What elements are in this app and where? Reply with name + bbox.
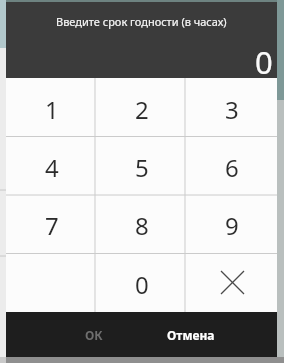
staticText: 2 [135,93,149,126]
button[interactable]: 2 [97,78,187,136]
button[interactable]: 6 [187,136,277,194]
staticText: 0 [255,41,273,83]
button[interactable]: ОК [45,312,142,357]
button[interactable]: 7 [6,194,97,253]
button[interactable]: 9 [187,194,277,253]
button[interactable]: Отмена [142,312,239,357]
staticText: 8 [135,209,149,242]
staticText: 3 [225,93,239,126]
staticText: 7 [45,209,59,242]
button[interactable]: 8 [97,194,187,253]
staticText: 4 [45,151,59,184]
staticText: 1 [45,93,59,126]
staticText: 6 [225,151,239,184]
staticText: Отмена [167,327,215,343]
button[interactable]: 3 [187,78,277,136]
staticText: 5 [135,151,149,184]
button[interactable]: 0 [97,253,187,312]
staticText: 0 [135,268,149,301]
button[interactable]: 1 [6,78,97,136]
staticText: 9 [225,209,239,242]
button[interactable]: 5 [97,136,187,194]
button[interactable] [6,253,97,312]
staticText: ОК [85,327,103,343]
button[interactable] [187,253,277,312]
staticText: Введите срок годности (в часах) [56,14,227,29]
button[interactable]: 4 [6,136,97,194]
